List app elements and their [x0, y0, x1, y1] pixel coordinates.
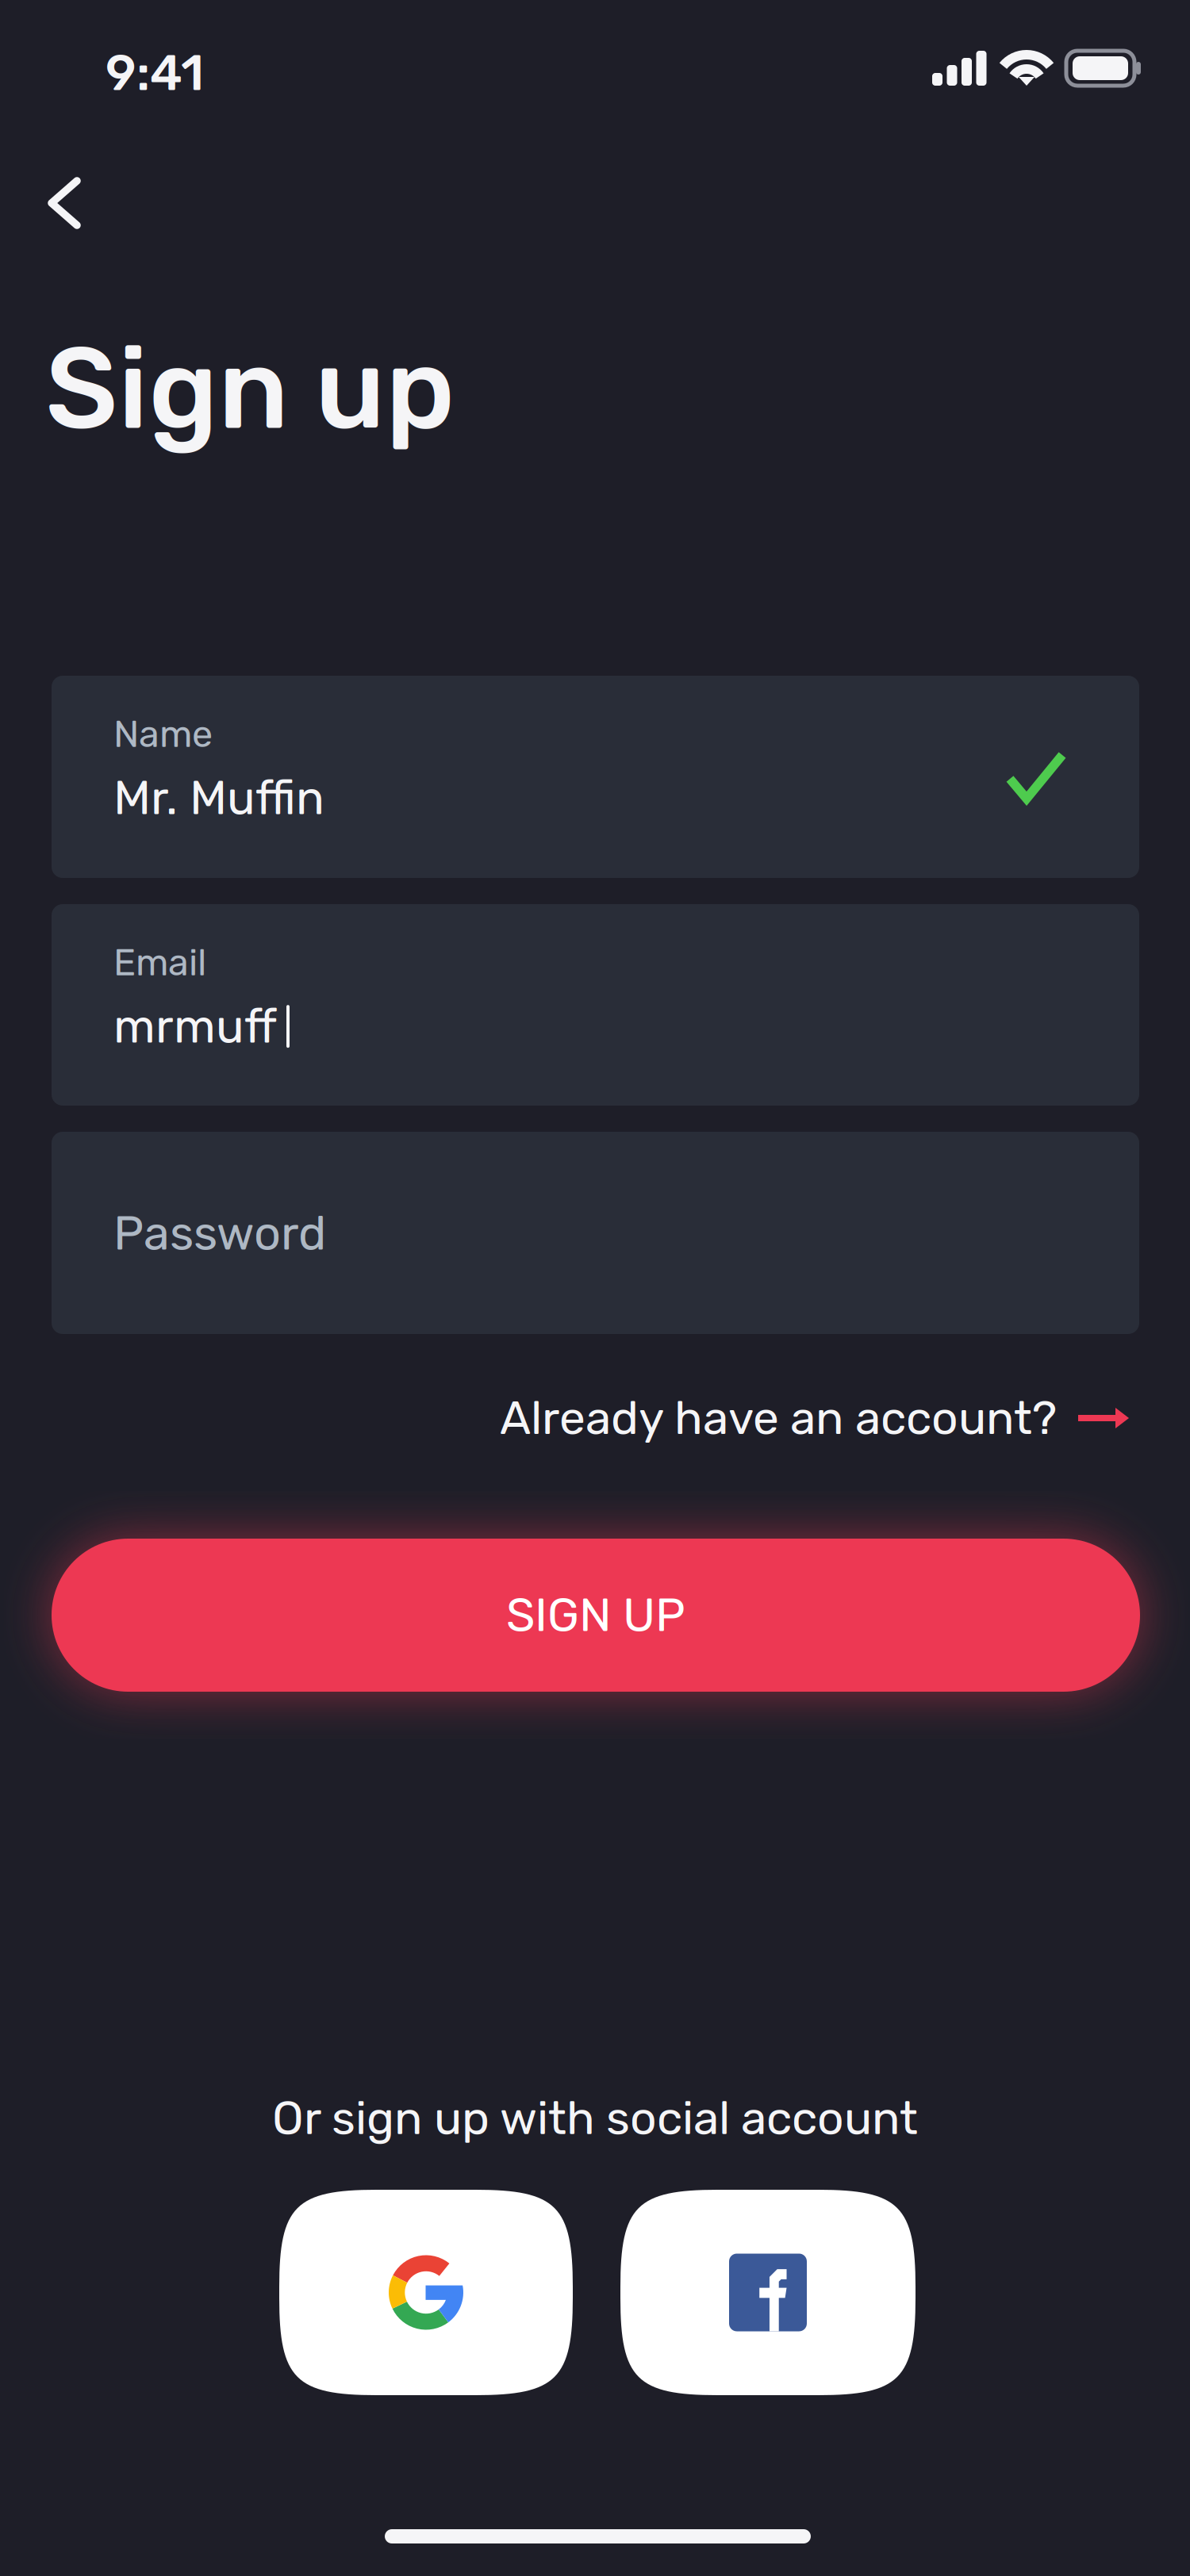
button[interactable]: Sign up with Facebook: [0, 0, 295, 205]
staticText: Mr. Muffin: [113, 770, 324, 826]
button[interactable]: Already have an account?: [0, 0, 698, 87]
staticText: Password: [113, 1206, 326, 1261]
button[interactable]: SIGN UP: [0, 0, 1088, 153]
staticText: Or sign up with social account: [272, 2091, 918, 2146]
staticText: Sign up: [45, 322, 455, 456]
staticText: 9:41: [106, 44, 204, 103]
staticText: Already have an account?: [500, 1390, 1057, 1446]
staticText: Name: [113, 712, 213, 756]
button[interactable]: Sign up with Google: [0, 0, 294, 205]
staticText: Email: [113, 941, 206, 984]
staticText: mrmuff: [113, 999, 277, 1054]
staticText: SIGN UP: [506, 1588, 685, 1643]
